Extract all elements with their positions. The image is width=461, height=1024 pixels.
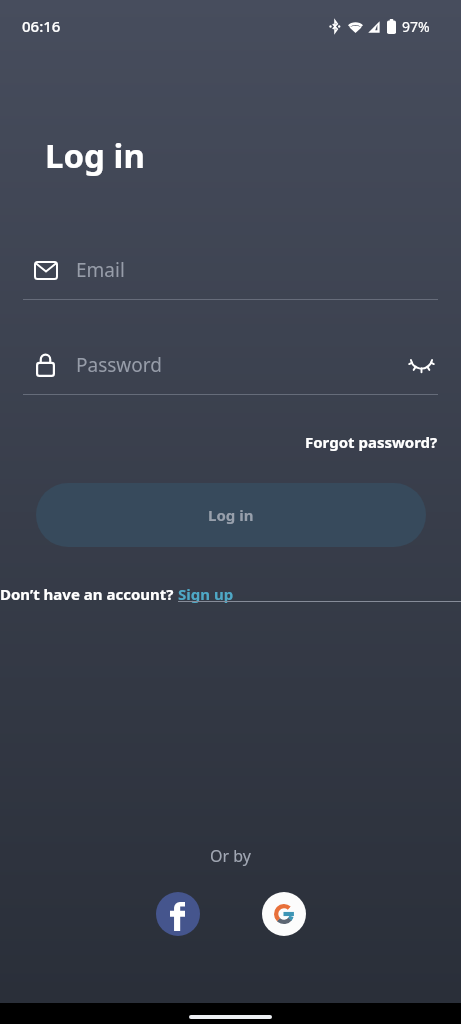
button[interactable]: Password (0, 345, 461, 385)
staticText: Don’t have an account? (0, 584, 178, 604)
button[interactable]: Email (0, 250, 461, 290)
button[interactable]: Sign in with Google (262, 892, 306, 936)
staticText: 06:16 (22, 16, 61, 36)
staticText: 97% (402, 17, 430, 36)
staticText: Sign up (178, 584, 234, 604)
staticText: Forgot password? (305, 432, 438, 452)
staticText: Or by (210, 845, 251, 867)
staticText: Email (76, 257, 125, 283)
button[interactable]: Forgot password? (289, 426, 461, 458)
staticText: Log in (45, 133, 145, 178)
staticText: Password (76, 352, 162, 378)
button[interactable]: Sign in with Facebook (156, 892, 200, 936)
button[interactable]: Show password (399, 345, 443, 385)
button[interactable]: Log in (36, 483, 426, 547)
staticText: Log in (208, 505, 254, 525)
button[interactable]: Sign up (178, 584, 461, 604)
